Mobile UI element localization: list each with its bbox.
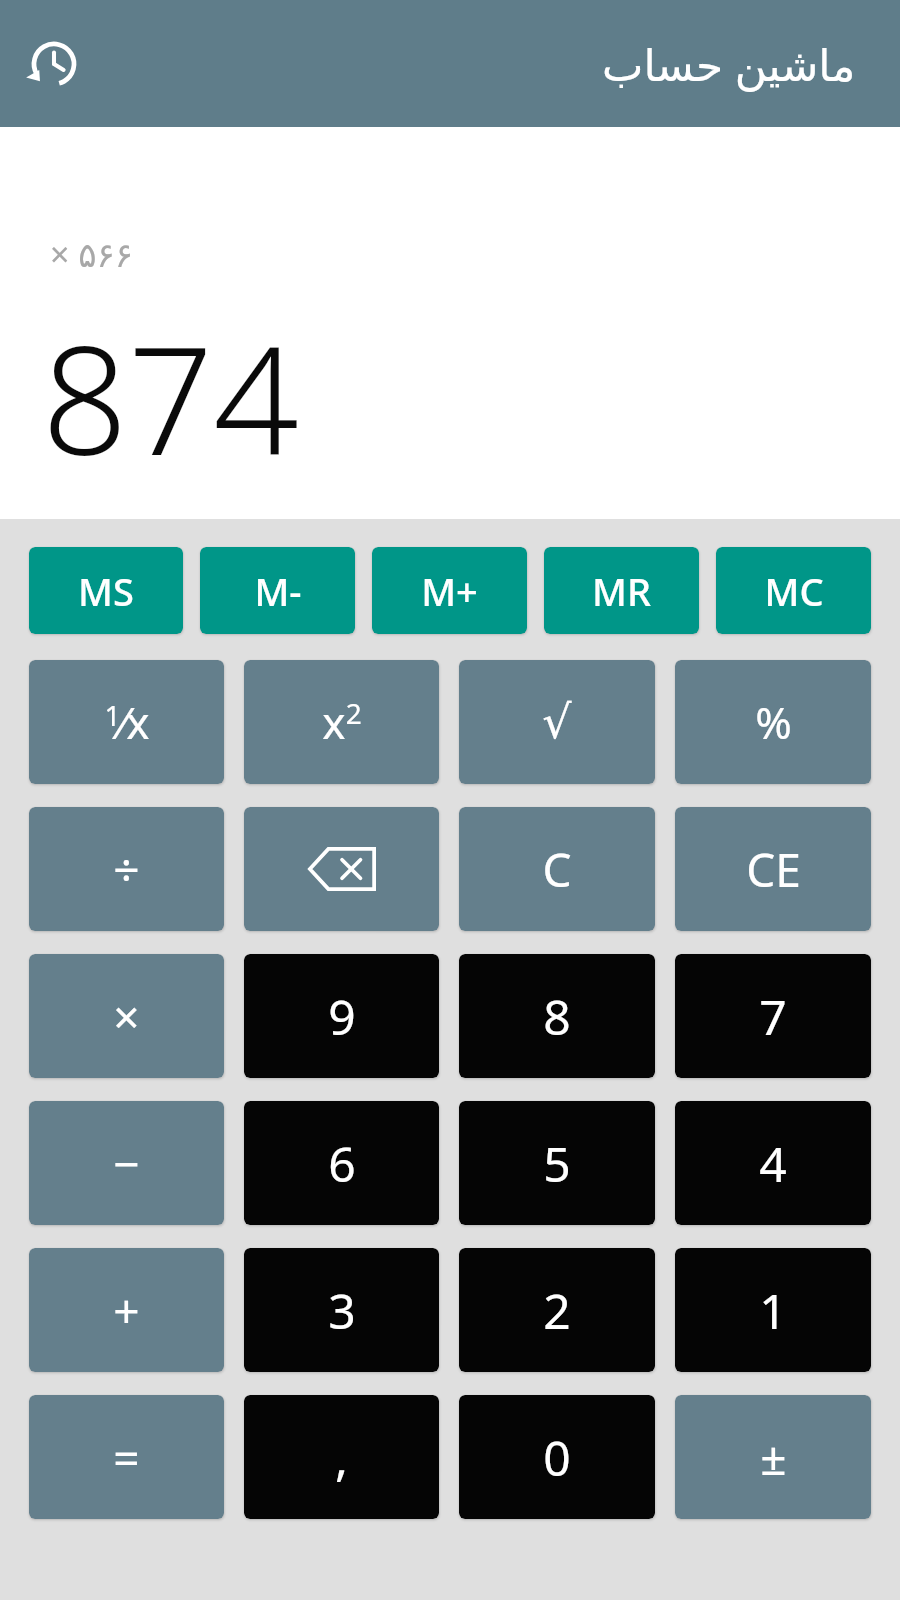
staticText: 5 — [543, 1131, 571, 1196]
button[interactable]: CE — [675, 807, 871, 931]
staticText: × — [113, 985, 140, 1048]
button[interactable]: 1⁄x — [29, 660, 224, 784]
button[interactable]: C — [459, 807, 655, 931]
button[interactable]: ÷ — [29, 807, 224, 931]
staticText: , — [335, 1425, 348, 1490]
button[interactable]: 7 — [675, 954, 871, 1078]
staticText: 3 — [328, 1278, 356, 1343]
button[interactable]: M- — [200, 547, 355, 634]
staticText: C — [542, 838, 572, 901]
staticText: M+ — [421, 565, 478, 617]
staticText: 8 — [543, 984, 571, 1049]
button[interactable]: 3 — [244, 1248, 439, 1372]
staticText: 0 — [543, 1425, 571, 1490]
button[interactable]: 8 — [459, 954, 655, 1078]
staticText: x2 — [322, 692, 362, 752]
button[interactable]: = — [29, 1395, 224, 1519]
staticText: MC — [764, 565, 824, 617]
button[interactable]: − — [29, 1101, 224, 1225]
button[interactable]: ± — [675, 1395, 871, 1519]
staticText: 6 — [328, 1131, 356, 1196]
staticText: √ — [542, 695, 572, 749]
button[interactable]: MC — [716, 547, 871, 634]
button[interactable]: M+ — [372, 547, 527, 634]
staticText: × ۵۶۶ — [50, 231, 134, 277]
button[interactable]: × — [29, 954, 224, 1078]
button[interactable]: 0 — [459, 1395, 655, 1519]
staticText: % — [755, 692, 792, 752]
staticText: M- — [254, 565, 302, 617]
staticText: 1⁄x — [104, 692, 150, 752]
button[interactable]: 6 — [244, 1101, 439, 1225]
button[interactable]: √ — [459, 660, 655, 784]
button[interactable]: MR — [544, 547, 699, 634]
staticText: 7 — [759, 984, 787, 1049]
button[interactable]: x2 — [244, 660, 439, 784]
button[interactable]: % — [675, 660, 871, 784]
staticText: ماشین حساب — [602, 34, 856, 94]
button[interactable]: 9 — [244, 954, 439, 1078]
staticText: CE — [746, 838, 801, 901]
staticText: ÷ — [113, 838, 140, 901]
staticText: 4 — [759, 1131, 787, 1196]
staticText: 874 — [42, 295, 299, 499]
button[interactable]: 5 — [459, 1101, 655, 1225]
button[interactable]: History — [12, 22, 96, 106]
button[interactable]: + — [29, 1248, 224, 1372]
staticText: ± — [760, 1426, 787, 1489]
staticText: = — [113, 1426, 140, 1489]
button[interactable]: MS — [29, 547, 183, 634]
button[interactable]: , — [244, 1395, 439, 1519]
staticText: MR — [592, 565, 651, 617]
button[interactable]: 2 — [459, 1248, 655, 1372]
staticText: 2 — [543, 1278, 571, 1343]
staticText: 1 — [759, 1278, 787, 1343]
staticText: + — [113, 1279, 140, 1342]
button[interactable]: 1 — [675, 1248, 871, 1372]
button[interactable]: 4 — [675, 1101, 871, 1225]
button[interactable]: Backspace — [244, 807, 439, 931]
staticText: 9 — [328, 984, 356, 1049]
staticText: MS — [78, 565, 134, 617]
staticText: − — [113, 1132, 140, 1195]
